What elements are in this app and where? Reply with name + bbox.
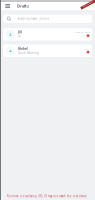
staticText: Yesterday 10:28 PM [75,32,89,33]
button[interactable]: Search by name, phone [3,15,92,23]
button[interactable]: Jill [3,28,92,41]
button[interactable]: Global [3,45,92,57]
staticText: Hi [18,35,21,38]
staticText: Good Morning [18,51,39,55]
button[interactable]: Menu [0,2,17,10]
staticText: Global [18,47,28,50]
staticText: Search by name, phone [17,17,49,20]
staticText: Jill [18,31,22,34]
staticText: Drafts [17,3,29,9]
staticText: 10/28/21 [83,48,89,50]
staticText: Runtime is emulating iOS. UI may not mat… [7,194,88,198]
